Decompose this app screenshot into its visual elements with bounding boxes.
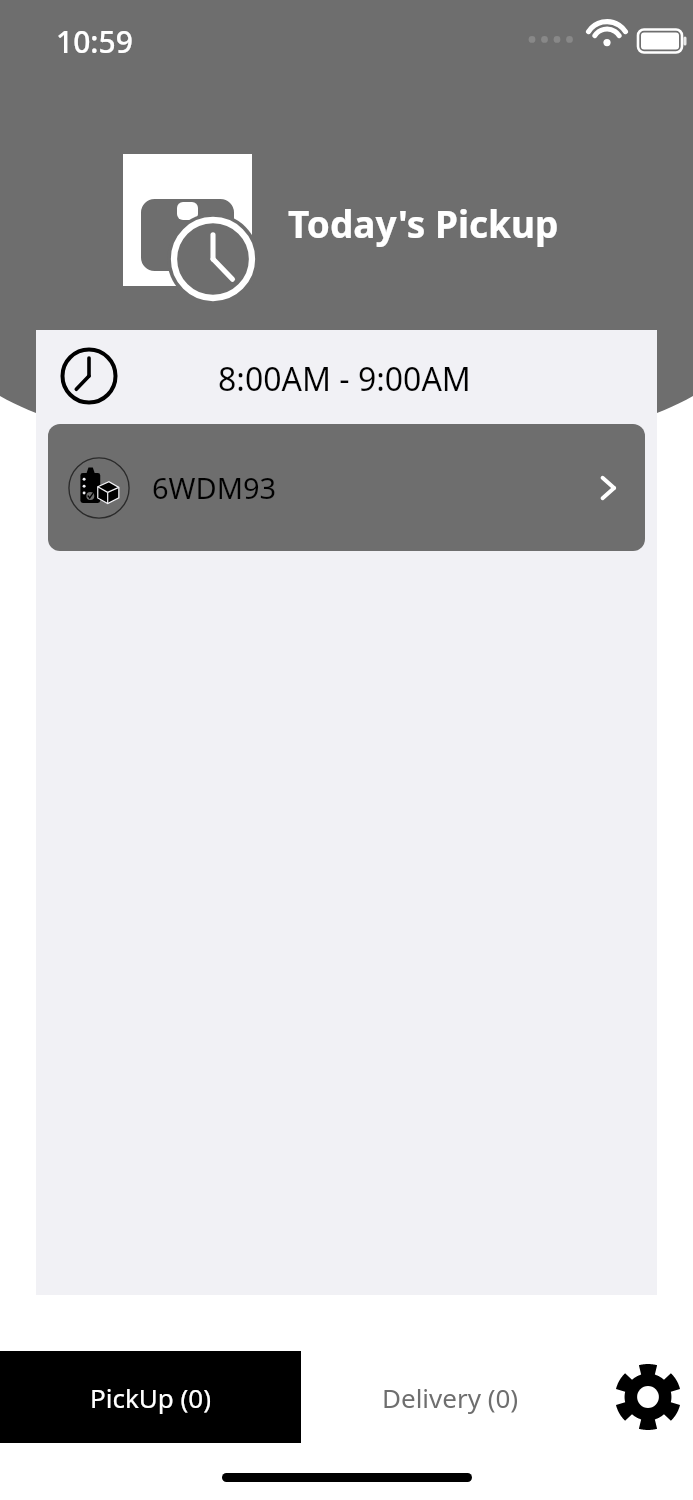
staticText: 6WDM93 <box>152 468 277 507</box>
staticText: Delivery (0) <box>382 1380 519 1415</box>
button[interactable]: 6WDM93 <box>48 424 645 551</box>
button[interactable]: PickUp (0) <box>0 1351 301 1443</box>
staticText: Today's Pickup <box>288 198 559 248</box>
button[interactable]: Delivery (0) <box>330 1351 570 1443</box>
button[interactable]: Settings <box>603 1351 693 1443</box>
staticText: 8:00AM - 9:00AM <box>218 357 471 401</box>
staticText: 10:59 <box>56 21 133 62</box>
staticText: PickUp (0) <box>90 1380 212 1415</box>
